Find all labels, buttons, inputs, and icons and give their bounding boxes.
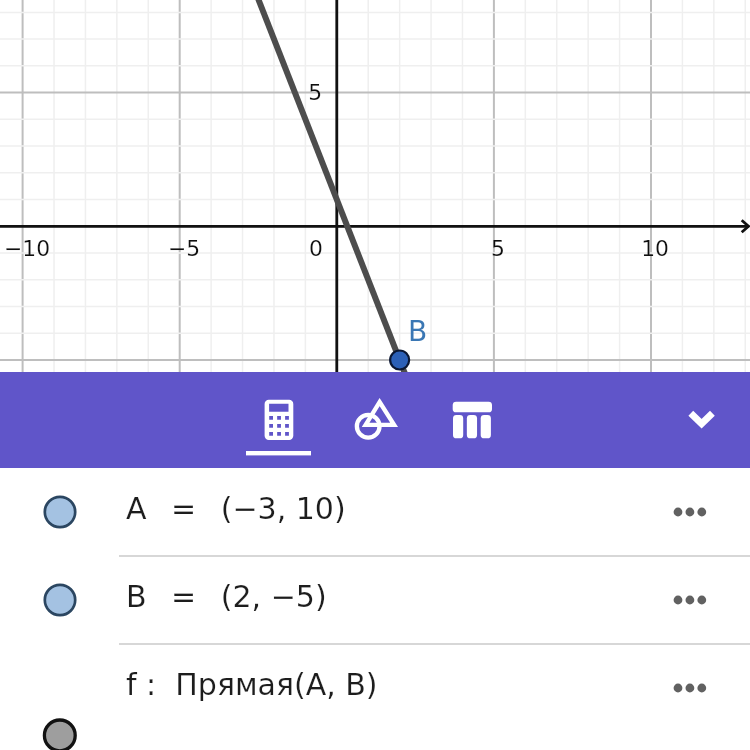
staticText: 5 [458,236,538,261]
staticText: B = (2, −5) [126,579,327,614]
button[interactable]: Toggle visibility [28,568,92,632]
button[interactable]: More options [658,576,706,624]
button[interactable]: Collapse panel [670,372,736,468]
staticText: 10 [615,236,695,261]
button[interactable]: Toggle visibility [28,480,92,544]
button[interactable]: Table of values [442,372,500,468]
staticText: −5 [144,236,224,261]
staticText: A = (−3, 10) [126,491,346,526]
staticText: B [408,315,428,348]
staticText: 0 [276,236,356,261]
staticText: −10 [0,236,67,261]
button[interactable]: Toggle visibility [0,468,750,556]
button[interactable]: Geometry tools [340,372,408,468]
button[interactable]: More options [658,664,706,712]
staticText: f : Прямая(A, B) [126,667,378,702]
staticText: 5 [242,80,322,105]
button[interactable]: f : Прямая(A, B) [0,644,750,732]
button[interactable]: More options [658,488,706,536]
button[interactable]: Graphing calculator [240,372,318,468]
button[interactable]: Toggle visibility [0,556,750,644]
